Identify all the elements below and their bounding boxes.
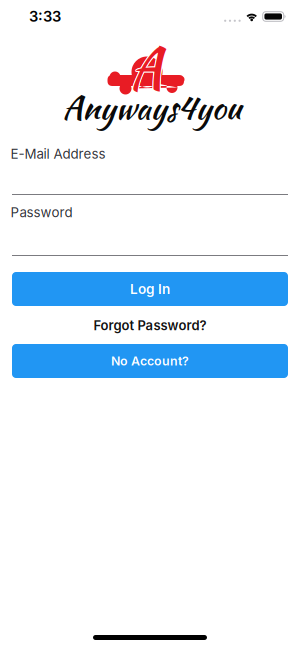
button[interactable]: No Account? (12, 344, 288, 378)
staticText: Password (10, 204, 72, 220)
staticText: E-Mail Address (10, 146, 105, 162)
staticText: A (127, 26, 164, 109)
staticText: A (127, 25, 164, 108)
button[interactable]: Forgot Password? (93, 319, 206, 332)
staticText: A (128, 24, 165, 108)
staticText: Forgot Password? (93, 318, 206, 333)
staticText: Log In (130, 281, 170, 297)
staticText: 3:33 (29, 8, 61, 25)
button[interactable]: Log In (12, 272, 288, 306)
staticText: Anyways4you (62, 84, 241, 131)
staticText: A (129, 25, 166, 108)
staticText: A (127, 25, 164, 109)
staticText: No Account? (111, 353, 189, 368)
staticText: A (129, 26, 166, 109)
staticText: A (128, 25, 165, 109)
staticText: A (129, 25, 166, 109)
staticText: A (128, 26, 165, 110)
